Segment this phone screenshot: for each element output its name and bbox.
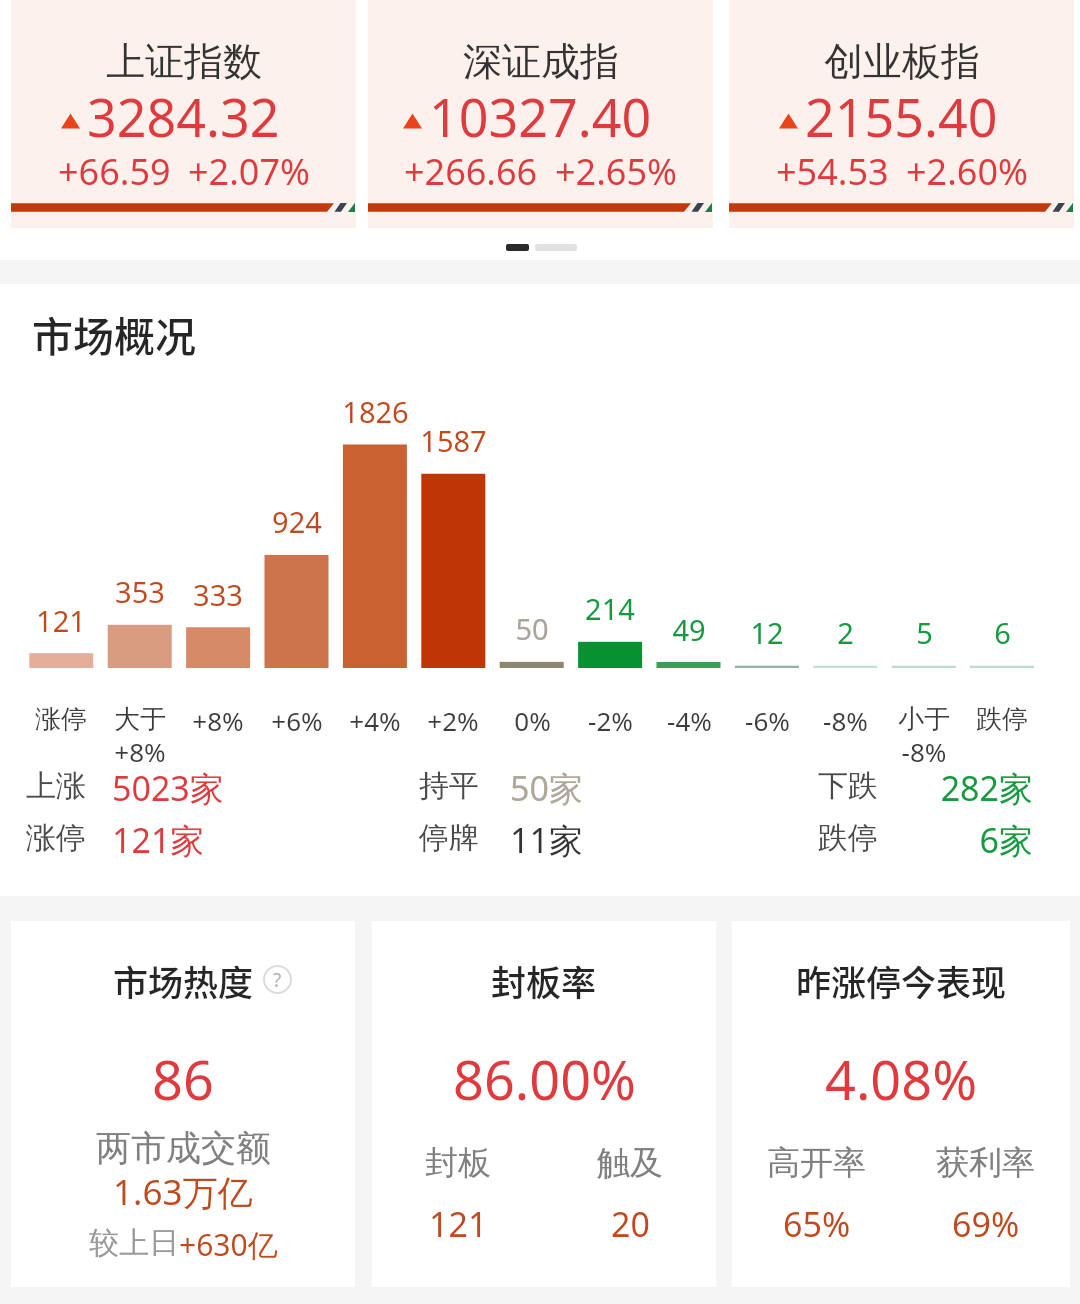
staticText: 持平 — [419, 767, 479, 805]
button[interactable]: 创业板指 — [729, 0, 1074, 228]
staticText: 市场热度 — [113, 955, 254, 1006]
staticText: +2% — [427, 703, 479, 738]
staticText: +2.60% — [906, 147, 1028, 196]
staticText: 跌停 — [976, 703, 1028, 736]
staticText: 1.63万亿 — [113, 1168, 253, 1216]
staticText: 86 — [152, 1042, 214, 1116]
staticText: 封板率 — [491, 955, 597, 1006]
staticText: 5 — [916, 613, 933, 652]
staticText: 50 — [515, 609, 549, 648]
staticText: 6 — [994, 613, 1011, 652]
staticText: 214 — [585, 589, 635, 628]
staticText: 86.00% — [453, 1042, 636, 1116]
staticText: 121 — [36, 601, 86, 640]
staticText: +4% — [349, 703, 401, 738]
staticText: 跌停 — [818, 819, 878, 857]
button[interactable]: 封板率 — [372, 921, 716, 1287]
staticText: 上证指数 — [106, 37, 262, 86]
staticText: -4% — [667, 703, 712, 738]
staticText: 上涨 — [26, 767, 86, 805]
staticText: 下跌 — [818, 767, 878, 805]
staticText: 小于 -8% — [898, 703, 950, 770]
staticText: 353 — [115, 572, 165, 611]
staticText: +66.59 — [58, 147, 171, 196]
staticText: -8% — [823, 703, 868, 738]
staticText: -6% — [745, 703, 790, 738]
staticText: 创业板指 — [824, 37, 980, 86]
staticText: 大于 +8% — [114, 703, 166, 770]
staticText: 121家 — [112, 817, 205, 863]
staticText: +54.53 — [776, 147, 889, 196]
staticText: 0% — [514, 703, 551, 738]
staticText: 333 — [193, 575, 243, 614]
staticText: 两市成交额 — [96, 1126, 271, 1170]
staticText: 深证成指 — [463, 37, 619, 86]
staticText: ? — [273, 967, 282, 993]
staticText: +630亿 — [179, 1224, 278, 1265]
button[interactable]: 市场热度 — [11, 921, 355, 1287]
staticText: 1826 — [342, 392, 409, 431]
staticText: 121 — [429, 1201, 488, 1247]
staticText: +266.66 — [404, 147, 538, 196]
button[interactable]: 市场热度说明 — [263, 965, 292, 994]
staticText: 封板 — [425, 1142, 491, 1184]
button[interactable]: 深证成指 — [368, 0, 713, 228]
staticText: 获利率 — [936, 1142, 1035, 1184]
staticText: 20 — [611, 1201, 650, 1247]
staticText: +2.65% — [555, 147, 677, 196]
staticText: 5023家 — [112, 765, 224, 811]
staticText: 4.08% — [825, 1042, 978, 1116]
staticText: 涨停 — [26, 819, 86, 857]
staticText: 10327.40 — [429, 81, 652, 152]
staticText: 停牌 — [419, 819, 479, 857]
staticText: 市场概况 — [32, 304, 196, 363]
staticText: +6% — [271, 703, 323, 738]
staticText: 高开率 — [767, 1142, 866, 1184]
staticText: 65% — [783, 1201, 851, 1247]
button[interactable]: 昨涨停今表现 — [732, 921, 1070, 1287]
staticText: 3284.32 — [87, 81, 280, 152]
staticText: 2 — [837, 613, 854, 652]
staticText: +8% — [192, 703, 244, 738]
staticText: 49 — [672, 610, 706, 649]
staticText: 924 — [272, 502, 322, 541]
staticText: -2% — [588, 703, 633, 738]
staticText: 6家 — [979, 817, 1033, 863]
staticText: 11家 — [510, 817, 583, 863]
staticText: 触及 — [597, 1142, 663, 1184]
staticText: 1587 — [420, 421, 487, 460]
staticText: 昨涨停今表现 — [796, 955, 1007, 1006]
button[interactable]: 上证指数 — [11, 0, 356, 228]
staticText: 50家 — [510, 765, 583, 811]
staticText: 2155.40 — [805, 81, 998, 152]
staticText: +2.07% — [188, 147, 310, 196]
staticText: 12 — [750, 613, 784, 652]
staticText: 69% — [952, 1201, 1020, 1247]
staticText: 较上日 — [89, 1224, 179, 1262]
staticText: 涨停 — [35, 703, 87, 736]
staticText: 282家 — [940, 765, 1033, 811]
